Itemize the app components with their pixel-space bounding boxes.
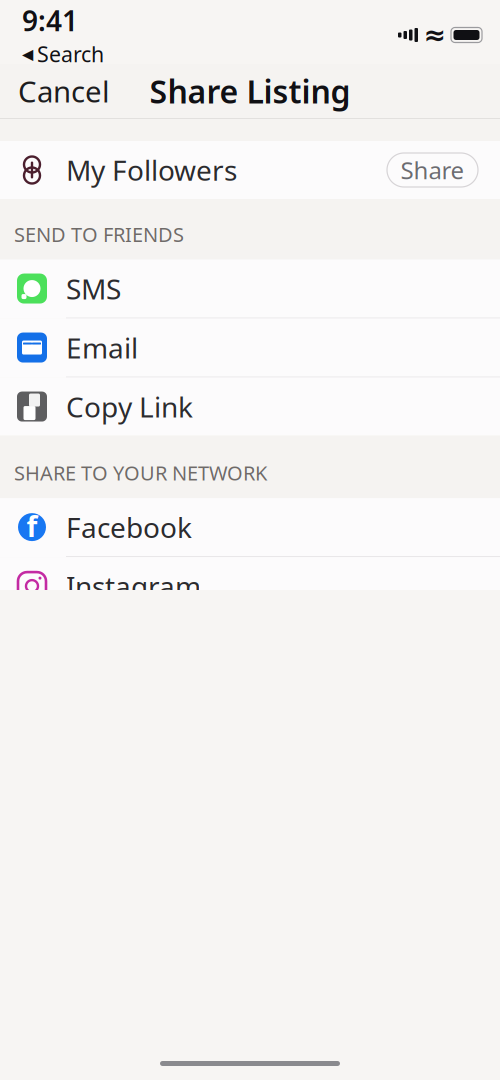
button[interactable]: Instagram bbox=[0, 557, 500, 616]
staticText: 9:41 bbox=[22, 2, 78, 39]
button[interactable]: Cancel bbox=[0, 61, 128, 120]
staticText: My Followers bbox=[66, 151, 237, 189]
staticText: Instagram bbox=[66, 567, 201, 605]
button[interactable]: My Followers bbox=[0, 141, 500, 199]
staticText: Cancel bbox=[18, 71, 110, 110]
staticText: Email bbox=[66, 329, 138, 366]
staticText: f bbox=[26, 507, 37, 545]
staticText: SEND TO FRIENDS bbox=[14, 221, 184, 248]
staticText: ≈ bbox=[423, 20, 445, 50]
staticText: Copy Link bbox=[66, 388, 193, 425]
button[interactable]: SMS bbox=[0, 260, 500, 319]
staticText: Search bbox=[37, 40, 104, 68]
staticText: Share bbox=[400, 154, 464, 186]
button[interactable]: f bbox=[0, 498, 500, 557]
staticText: Facebook bbox=[66, 508, 192, 546]
button[interactable]: Copy Link bbox=[0, 378, 500, 436]
staticText: SHARE TO YOUR NETWORK bbox=[14, 460, 267, 486]
staticText: Share Listing bbox=[149, 70, 350, 112]
staticText: SMS bbox=[66, 270, 121, 307]
button[interactable]: Email bbox=[0, 319, 500, 378]
staticText: ◀ bbox=[22, 46, 33, 62]
